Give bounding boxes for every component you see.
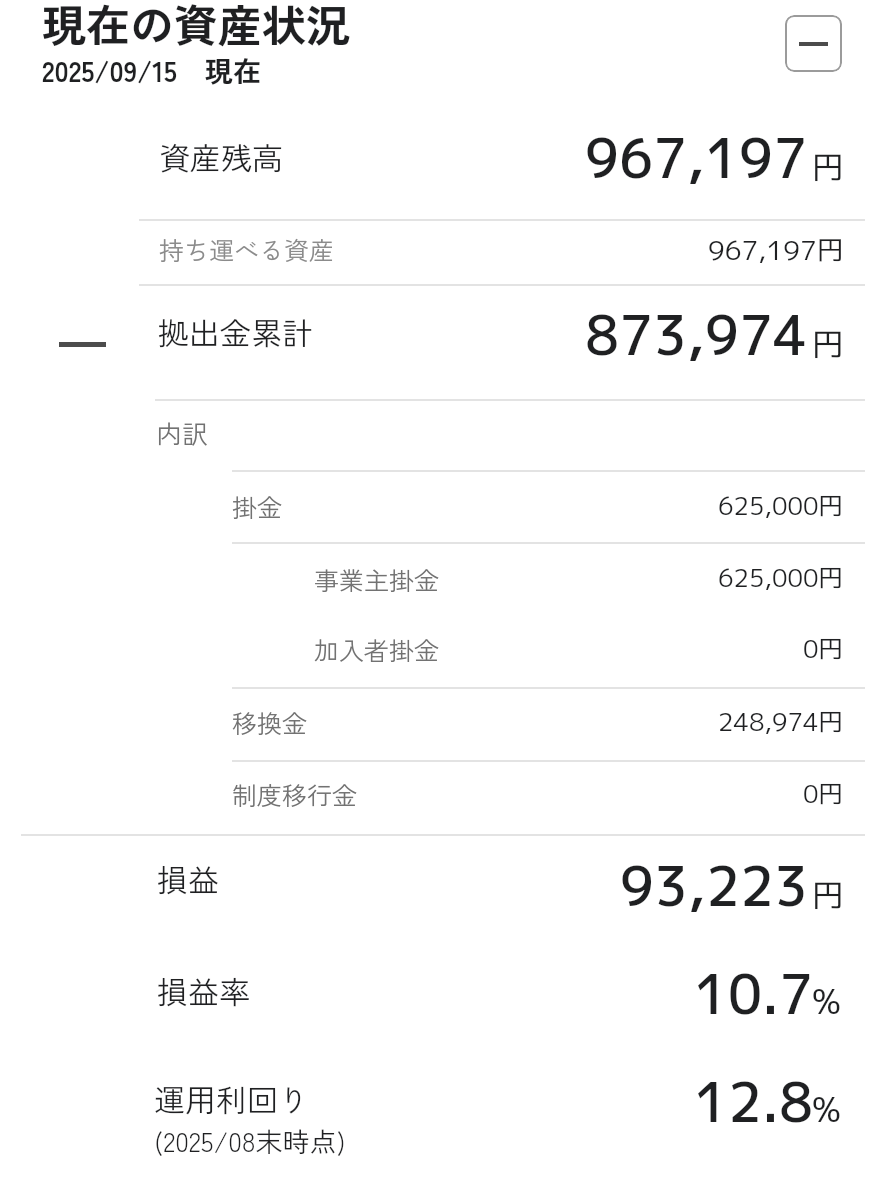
staticText: 運用利回り	[154, 1076, 309, 1121]
staticText: 事業主掛金	[314, 561, 440, 597]
button[interactable]: 損益率	[0, 948, 887, 1056]
staticText: 0円	[803, 776, 844, 811]
button[interactable]: 運用利回り	[0, 1056, 887, 1186]
staticText: 円	[812, 322, 845, 367]
button[interactable]: 拠出金累計	[0, 288, 887, 399]
button[interactable]: 移換金	[0, 689, 887, 760]
staticText: 現在の資産状況	[42, 0, 350, 55]
button[interactable]: 制度移行金	[0, 762, 887, 834]
button[interactable]: 資産残高	[0, 112, 887, 219]
staticText: 2025/09/15 現在	[42, 50, 261, 91]
staticText: 967,197円	[708, 231, 844, 269]
staticText: 625,000円	[718, 488, 844, 523]
staticText: 円	[812, 873, 845, 918]
staticText: 資産残高	[159, 134, 283, 179]
staticText: 12.8	[694, 1064, 814, 1139]
staticText: (2025/08末時点)	[154, 1121, 346, 1160]
staticText: 損益率	[157, 968, 250, 1013]
staticText: %	[812, 1085, 841, 1132]
button[interactable]: 掛金	[0, 472, 887, 542]
staticText: 円	[812, 145, 845, 190]
staticText: 248,974円	[718, 704, 844, 739]
staticText: 10.7	[694, 956, 814, 1031]
button[interactable]: 損益	[0, 840, 887, 948]
staticText: 0円	[803, 631, 844, 666]
staticText: 拠出金累計	[158, 309, 313, 354]
staticText: %	[812, 977, 841, 1024]
staticText: 加入者掛金	[314, 631, 440, 667]
button[interactable]: 持ち運べる資産	[0, 221, 887, 284]
staticText: 制度移行金	[232, 776, 358, 812]
staticText: 967,197	[585, 120, 808, 195]
staticText: 内訳	[156, 414, 209, 452]
staticText: 625,000円	[718, 560, 844, 595]
staticText: 873,974	[585, 297, 808, 372]
staticText: 掛金	[232, 488, 283, 524]
staticText: 移換金	[232, 704, 308, 740]
staticText: 93,223	[620, 848, 809, 923]
button[interactable]: 折りたたむ	[785, 15, 842, 72]
button[interactable]: 事業主掛金	[0, 544, 887, 615]
button[interactable]: 加入者掛金	[0, 615, 887, 687]
staticText: 損益	[157, 856, 219, 901]
staticText: 持ち運べる資産	[159, 231, 335, 267]
